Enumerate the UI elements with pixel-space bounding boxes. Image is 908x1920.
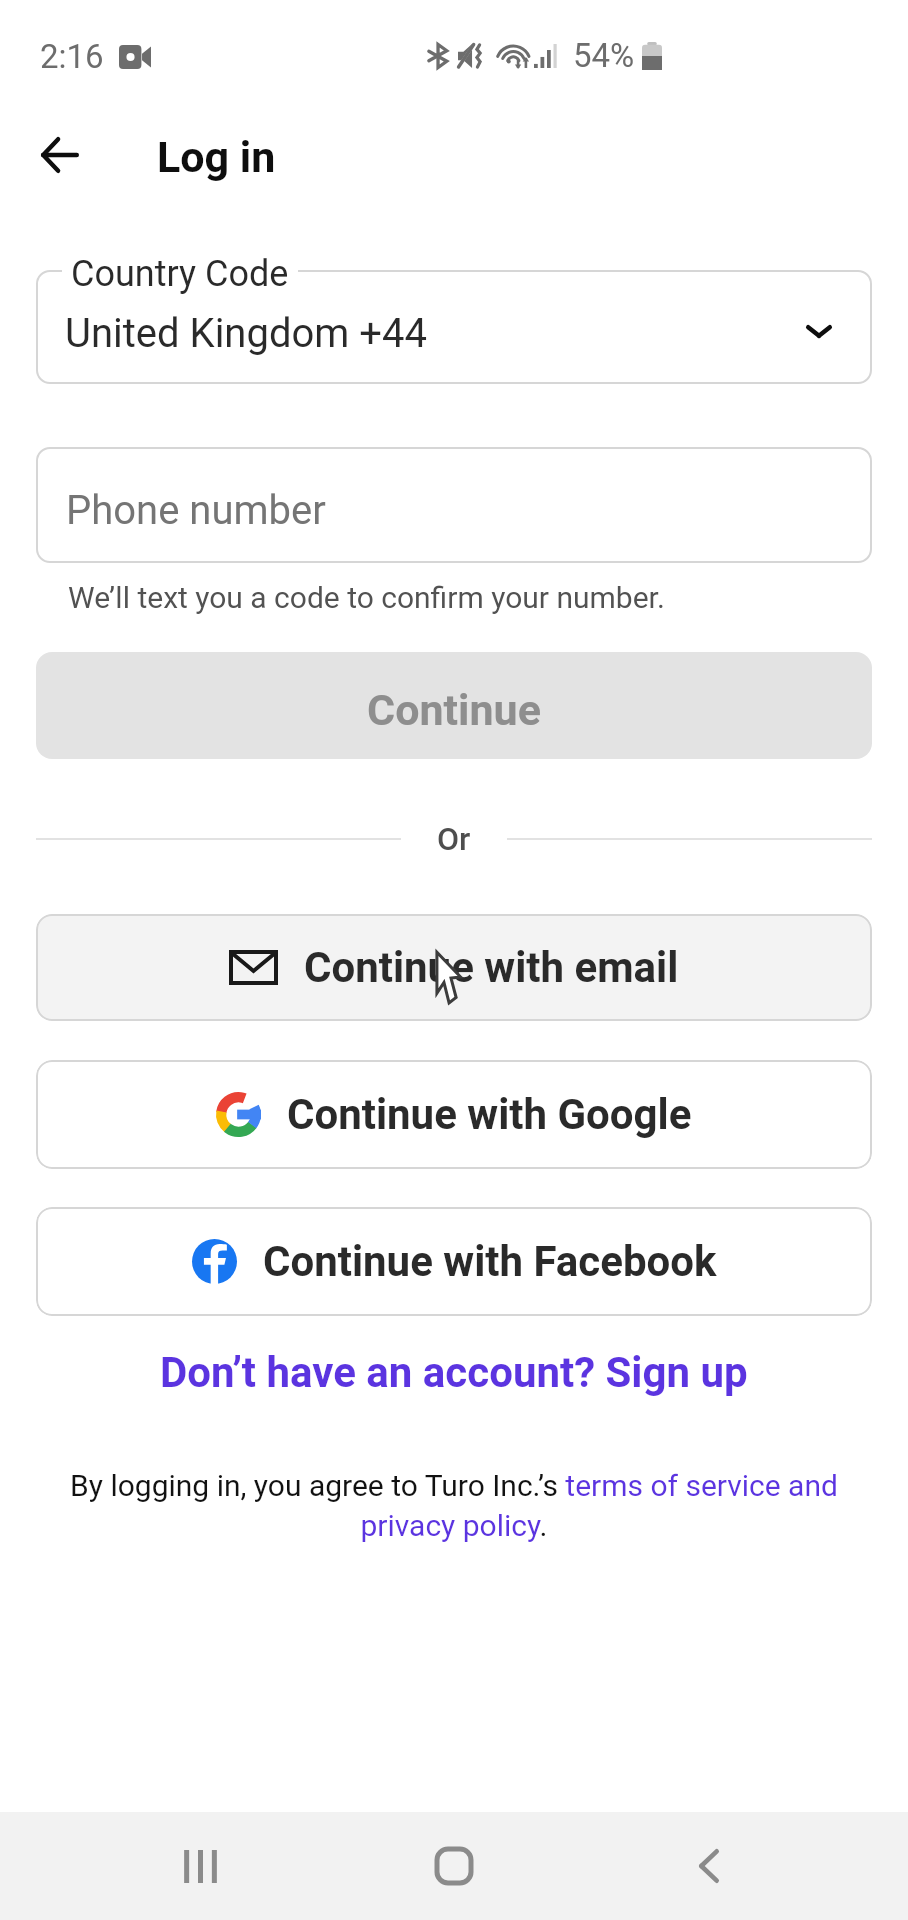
staticText: Or — [437, 820, 471, 858]
staticText: Continue — [367, 685, 541, 735]
button[interactable]: Continue with email — [36, 914, 872, 1021]
staticText: Log in — [157, 132, 276, 182]
button[interactable]: Back — [22, 117, 98, 193]
button[interactable]: Continue with Facebook — [36, 1207, 872, 1316]
staticText: United Kingdom +44 — [65, 310, 427, 357]
button[interactable]: Continue — [36, 652, 872, 759]
button[interactable]: Phone number — [36, 447, 872, 563]
staticText: Country Code — [71, 253, 289, 295]
button[interactable]: Home — [399, 1812, 509, 1920]
staticText: Continue with email — [304, 943, 679, 992]
staticText: Don’t have an account? Sign up — [160, 1348, 748, 1397]
staticText: Continue with Google — [287, 1090, 692, 1139]
staticText: We’ll text you a code to confirm your nu… — [68, 580, 665, 615]
button[interactable]: Don’t have an account? Sign up — [0, 1341, 908, 1403]
button[interactable]: Back — [654, 1812, 764, 1920]
staticText: Continue with Facebook — [263, 1237, 717, 1286]
button[interactable]: By logging in, you agree to Turo Inc.’s … — [62, 1468, 846, 1544]
staticText: 2:16 — [40, 37, 104, 76]
button[interactable]: Continue with Google — [36, 1060, 872, 1169]
button[interactable]: United Kingdom +44 — [36, 270, 872, 384]
staticText: 54% — [573, 36, 635, 75]
staticText: Phone number — [66, 487, 326, 534]
button[interactable]: Recent apps — [145, 1812, 255, 1920]
staticText: By logging in, you agree to Turo Inc.’s … — [62, 1468, 846, 1544]
